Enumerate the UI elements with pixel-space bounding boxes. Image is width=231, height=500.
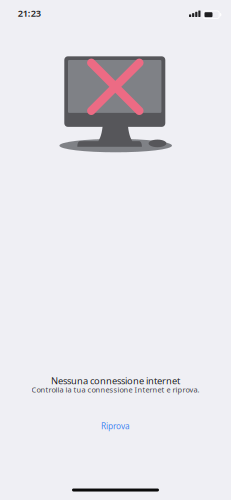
staticText: 21:23 bbox=[18, 7, 41, 19]
staticText: Nessuna connessione internet bbox=[51, 374, 180, 387]
button[interactable]: Riprova bbox=[87, 417, 143, 435]
staticText: Riprova bbox=[101, 420, 130, 432]
staticText: Controlla la tua connessione Internet e … bbox=[31, 385, 199, 395]
